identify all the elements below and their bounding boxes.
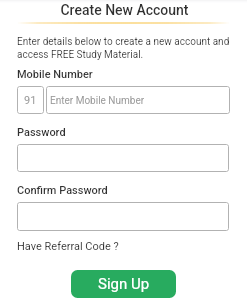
staticText: Sign Up xyxy=(98,275,150,293)
button[interactable] xyxy=(17,144,229,172)
button[interactable]: Enter Mobile Number xyxy=(46,86,230,114)
button[interactable]: Sign Up xyxy=(71,270,176,298)
button[interactable]: 91 xyxy=(17,86,44,114)
staticText: Have Referral Code ? xyxy=(17,240,119,253)
staticText: Mobile Number xyxy=(17,68,93,81)
button[interactable] xyxy=(17,202,229,231)
staticText: Confirm Password xyxy=(17,184,108,197)
button[interactable]: Have Referral Code ? xyxy=(17,240,119,253)
staticText: Password xyxy=(17,126,66,139)
staticText: Create New Account xyxy=(1,2,247,18)
staticText: 91 xyxy=(24,94,37,107)
staticText: Enter Mobile Number xyxy=(50,95,145,107)
staticText: Enter details below to create a new acco… xyxy=(17,36,233,60)
